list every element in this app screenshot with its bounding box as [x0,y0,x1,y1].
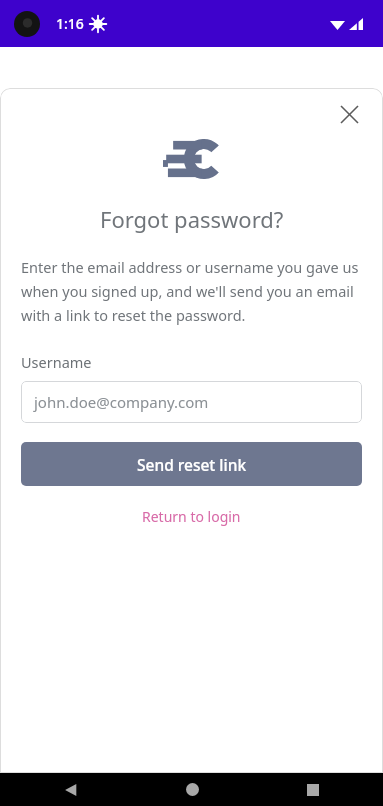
button[interactable]: Home [170,773,214,806]
staticText: Enter the email address or username you … [21,257,362,325]
button[interactable]: Send reset link [21,442,362,486]
button[interactable]: Close [329,94,369,134]
button[interactable]: Recent apps [291,773,335,806]
staticText: Return to login [142,507,241,526]
staticText: john.doe@company.com [34,392,209,412]
button[interactable]: john.doe@company.com [21,381,362,423]
staticText: Forgot password? [100,204,284,234]
button[interactable]: Back [48,773,92,806]
staticText: Username [21,352,92,372]
button[interactable]: Return to login [134,504,249,529]
staticText: 1:16 [56,14,84,33]
staticText: Send reset link [137,454,247,475]
